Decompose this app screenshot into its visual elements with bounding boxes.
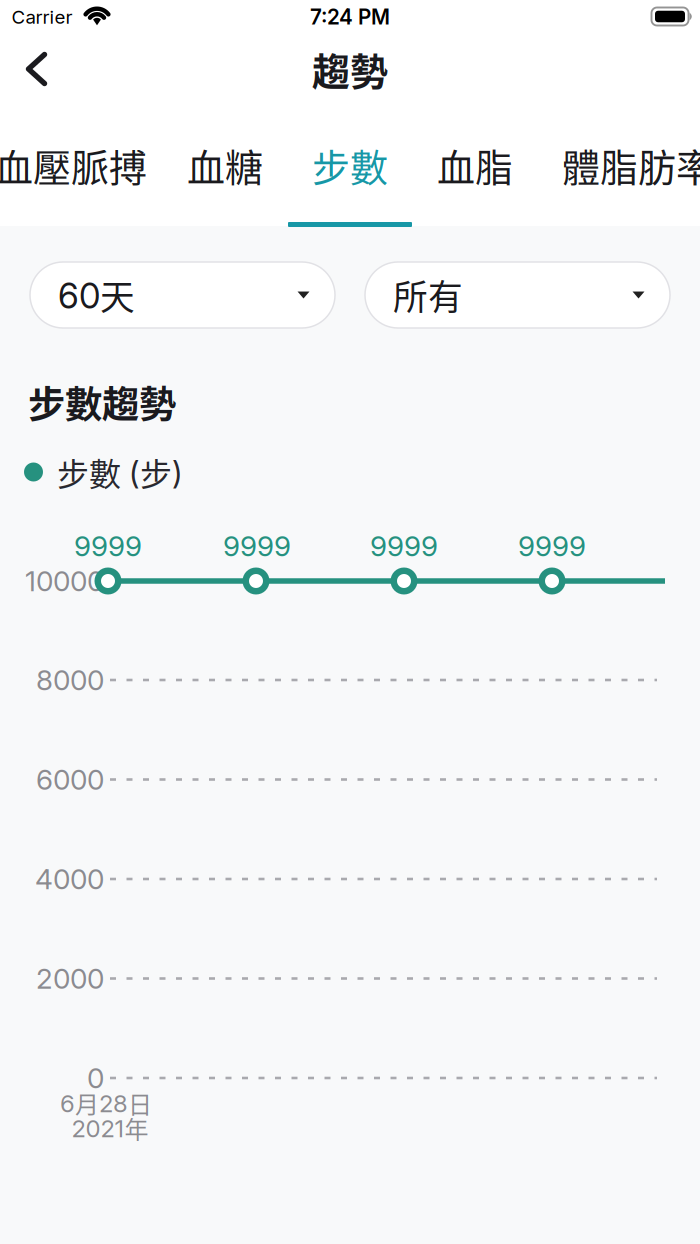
staticText: 體脂肪率 xyxy=(562,137,700,192)
staticText: 步數趨勢 xyxy=(28,375,176,429)
staticText: 9999 xyxy=(518,529,586,562)
staticText: 6000 xyxy=(36,763,104,796)
staticText: 步數 (步) xyxy=(57,449,183,495)
staticText: 9999 xyxy=(370,529,438,562)
staticText: 所有 xyxy=(393,270,463,320)
staticText: 8000 xyxy=(36,663,104,696)
button[interactable]: 步數 xyxy=(288,117,412,213)
staticText: 60天 xyxy=(58,270,135,320)
staticText: 血糖 xyxy=(187,137,263,192)
button[interactable]: Back xyxy=(10,37,63,100)
staticText: 血壓脈搏 xyxy=(0,137,147,192)
staticText: Carrier xyxy=(11,6,72,28)
staticText: 6月28日 xyxy=(60,1086,152,1120)
button[interactable]: 體脂肪率 xyxy=(538,117,700,213)
staticText: 趨勢 xyxy=(312,41,388,96)
staticText: 步數 xyxy=(312,137,388,192)
staticText: 9999 xyxy=(74,529,142,562)
staticText: 0 xyxy=(87,1061,104,1094)
staticText: 7:24 PM xyxy=(310,4,390,29)
staticText: 2000 xyxy=(36,962,104,995)
button[interactable]: 所有 xyxy=(365,262,670,328)
staticText: 2021年 xyxy=(71,1111,148,1145)
button[interactable]: 血壓脈搏 xyxy=(0,117,171,213)
button[interactable]: 60天 xyxy=(30,262,335,328)
staticText: 血脂 xyxy=(437,137,513,192)
staticText: 10000 xyxy=(25,564,104,597)
staticText: 4000 xyxy=(35,862,104,895)
staticText: 9999 xyxy=(223,529,291,562)
button[interactable]: 血脂 xyxy=(413,117,537,213)
button[interactable]: 血糖 xyxy=(163,117,287,213)
